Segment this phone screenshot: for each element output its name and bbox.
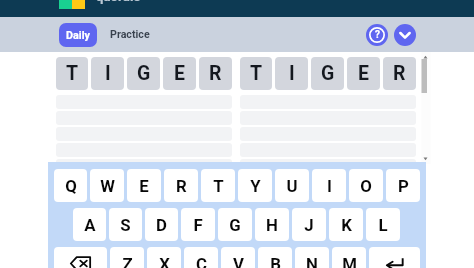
staticText: H (266, 215, 278, 235)
button[interactable]: L (366, 208, 400, 241)
staticText: I (105, 62, 111, 85)
button[interactable]: E (127, 169, 161, 202)
button[interactable]: C (184, 247, 218, 268)
staticText: M (342, 254, 357, 268)
staticText: R (176, 176, 187, 196)
button[interactable]: Practice (104, 22, 156, 46)
staticText: R (393, 62, 406, 85)
button[interactable]: Q (54, 169, 87, 202)
button[interactable]: T (240, 57, 272, 90)
staticText: Daily (66, 29, 90, 42)
button[interactable]: Daily (59, 23, 97, 47)
button[interactable]: Z (110, 247, 144, 268)
staticText: F (193, 215, 203, 235)
staticText: L (378, 215, 388, 235)
staticText: E (174, 62, 185, 85)
button[interactable]: F (181, 208, 215, 241)
staticText: A (84, 215, 96, 235)
staticText: E (358, 62, 369, 85)
button[interactable]: I (275, 57, 308, 90)
staticText: Q (65, 176, 77, 196)
staticText: ? (375, 29, 380, 41)
button[interactable]: G (311, 57, 344, 90)
button[interactable]: G (218, 208, 252, 241)
button[interactable]: I (91, 57, 124, 90)
staticText: T (66, 62, 79, 85)
button[interactable]: J (292, 208, 326, 241)
staticText: I (289, 62, 295, 85)
button[interactable]: H (255, 208, 289, 241)
button[interactable]: T (56, 57, 88, 90)
staticText: K (341, 215, 352, 235)
button[interactable]: O (349, 169, 383, 202)
button[interactable]: Enter (369, 247, 420, 268)
staticText: C (196, 254, 207, 268)
button[interactable]: S (109, 208, 142, 241)
button[interactable]: A (73, 208, 106, 241)
button[interactable]: R (164, 169, 198, 202)
staticText: E (139, 176, 149, 196)
staticText: D (156, 215, 167, 235)
staticText: S (120, 215, 131, 235)
button[interactable]: I (312, 169, 346, 202)
staticText: G (321, 62, 335, 85)
button[interactable]: X (147, 247, 181, 268)
staticText: V (233, 254, 244, 268)
staticText: T (213, 176, 224, 196)
staticText: O (360, 176, 372, 196)
button[interactable]: E (163, 57, 196, 90)
button[interactable]: U (275, 169, 309, 202)
button[interactable]: V (221, 247, 255, 268)
button[interactable]: Y (238, 169, 272, 202)
button[interactable]: E (347, 57, 380, 90)
button[interactable]: Backspace (54, 247, 107, 268)
button[interactable]: K (329, 208, 363, 241)
staticText: J (304, 215, 314, 235)
button[interactable]: R (383, 57, 416, 90)
staticText: G (229, 215, 241, 235)
button[interactable]: N (295, 247, 329, 268)
staticText: Z (122, 254, 133, 268)
button[interactable]: P (386, 169, 420, 202)
staticText: G (137, 62, 151, 85)
staticText: T (250, 62, 263, 85)
staticText: N (306, 254, 318, 268)
staticText: Y (250, 176, 261, 196)
staticText: quordle (96, 0, 141, 4)
staticText: P (398, 176, 409, 196)
staticText: Practice (110, 28, 150, 41)
staticText: I (327, 176, 332, 196)
button[interactable]: D (145, 208, 178, 241)
button[interactable]: W (90, 169, 124, 202)
button[interactable]: R (199, 57, 232, 90)
staticText: X (159, 254, 170, 268)
button[interactable]: T (201, 169, 235, 202)
staticText: U (286, 176, 298, 196)
staticText: B (270, 254, 281, 268)
staticText: R (209, 62, 222, 85)
button[interactable]: Show more (394, 24, 416, 46)
staticText: W (100, 176, 115, 196)
button[interactable]: M (332, 247, 366, 268)
button[interactable]: G (127, 57, 160, 90)
button[interactable]: B (258, 247, 292, 268)
button[interactable]: Help (366, 24, 388, 46)
